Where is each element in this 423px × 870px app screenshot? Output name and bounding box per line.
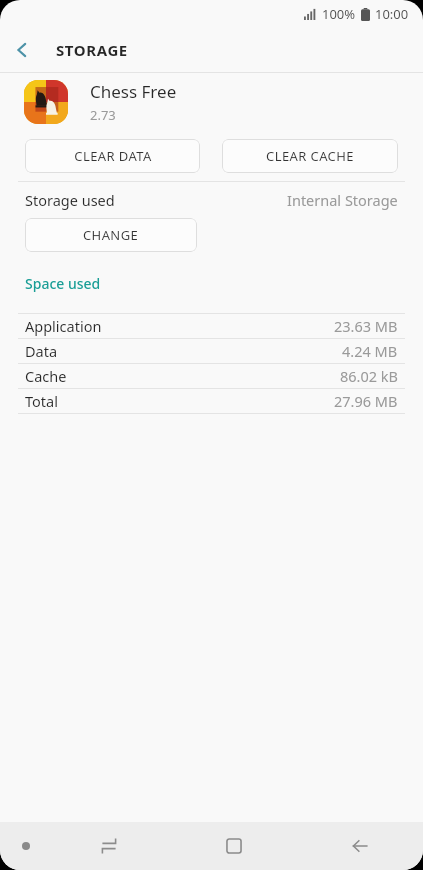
staticText: CHANGE (83, 226, 139, 244)
button[interactable]: Home (171, 822, 297, 870)
staticText: Total (25, 391, 58, 411)
button[interactable]: Back (297, 822, 423, 870)
staticText: Cache (25, 366, 67, 386)
button[interactable]: Back (0, 28, 44, 72)
staticText: CLEAR DATA (74, 147, 152, 165)
staticText: 86.02 kB (340, 366, 398, 386)
button[interactable]: Recent apps (46, 822, 171, 870)
button[interactable]: CLEAR DATA (25, 139, 200, 173)
staticText: 4.24 MB (342, 341, 398, 361)
staticText: 100% (322, 5, 356, 23)
staticText: Data (25, 341, 58, 361)
staticText: 27.96 MB (334, 391, 398, 411)
staticText: STORAGE (56, 40, 128, 60)
staticText: Storage used (25, 190, 115, 210)
button[interactable]: CHANGE (25, 218, 197, 252)
staticText: 10:00 (375, 5, 409, 23)
staticText: Chess Free (90, 80, 177, 103)
staticText: CLEAR CACHE (266, 147, 354, 165)
staticText: Application (25, 316, 102, 336)
staticText: 2.73 (90, 106, 116, 124)
staticText: Internal Storage (287, 190, 398, 210)
button[interactable]: CLEAR CACHE (222, 139, 398, 173)
staticText: 23.63 MB (334, 316, 398, 336)
staticText: Space used (25, 274, 101, 293)
